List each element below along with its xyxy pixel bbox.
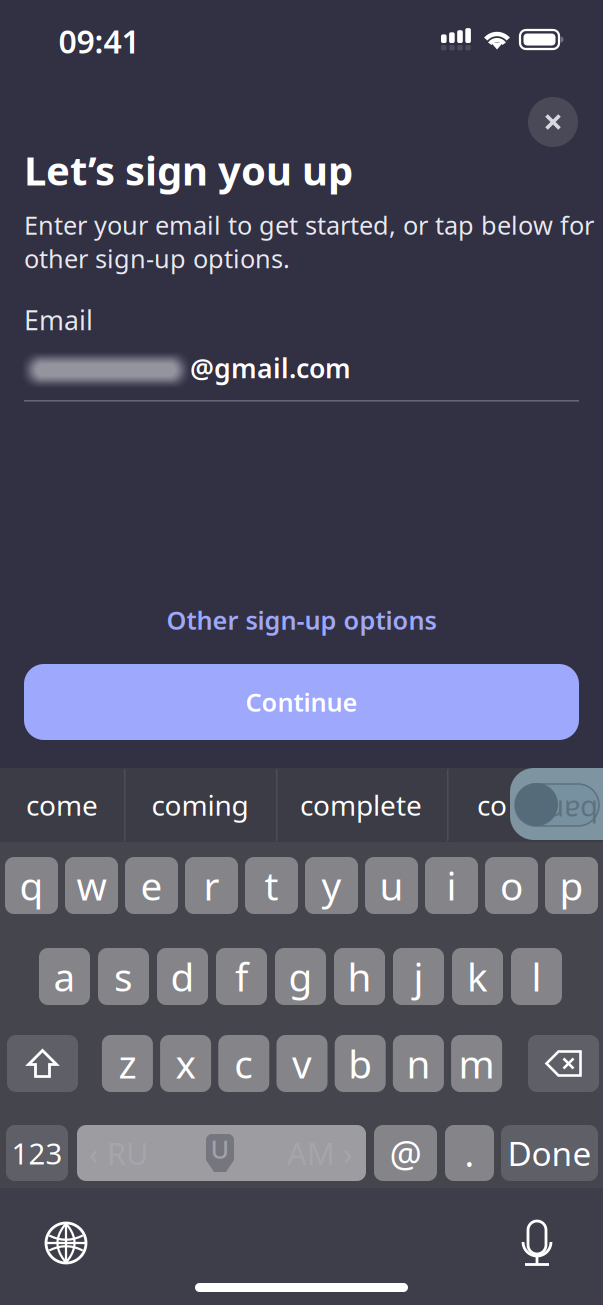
staticText: j [413,951,423,1002]
staticText: p [559,860,583,911]
staticText: a [53,951,75,1002]
button[interactable]: u [365,857,418,914]
staticText: 09:41 [58,20,139,62]
staticText: ‹ RU [89,1133,148,1173]
staticText: Let’s sign you up [24,143,353,196]
staticText: v [292,1038,312,1089]
button[interactable]: e [125,857,178,914]
button[interactable]: y [305,857,358,914]
button[interactable]: Space [77,1125,366,1181]
staticText: t [264,860,278,911]
staticText: y [321,860,341,911]
staticText: @gmail.com [190,350,351,386]
button[interactable]: w [65,857,118,914]
button[interactable]: m [451,1035,502,1092]
staticText: Done [507,1131,591,1175]
button[interactable]: Done [501,1125,598,1181]
button[interactable]: t [245,857,298,914]
button[interactable]: . [445,1125,494,1181]
button[interactable]: p [545,857,598,914]
button[interactable]: j [393,948,444,1005]
staticText: complete [300,786,422,824]
button[interactable]: h [334,948,385,1005]
staticText: uɐq [546,785,598,824]
staticText: come [26,786,98,824]
staticText: z [118,1038,136,1089]
button[interactable]: complete [276,768,446,842]
button[interactable]: Close [528,97,578,147]
button[interactable]: l [511,948,562,1005]
button[interactable]: @ [374,1125,437,1181]
button[interactable]: Shift [7,1035,78,1092]
staticText: h [347,951,371,1002]
button[interactable]: n [393,1035,444,1092]
button[interactable]: co [447,768,537,842]
staticText: co [477,786,507,824]
staticText: @ [389,1129,421,1177]
staticText: w [76,860,106,911]
button[interactable]: come [0,768,124,842]
staticText: . [464,1129,474,1177]
button[interactable]: o [485,857,538,914]
button[interactable]: k [452,948,503,1005]
button[interactable]: a [39,948,90,1005]
button[interactable]: d [157,948,208,1005]
button[interactable]: Delete [528,1035,599,1092]
staticText: AM › [287,1133,353,1173]
button[interactable]: r [185,857,238,914]
button[interactable]: Other sign-up options [0,600,603,640]
staticText: m [459,1038,495,1089]
staticText: b [348,1038,372,1089]
staticText: Other sign-up options [166,603,436,637]
staticText: k [467,951,488,1002]
button[interactable]: s [98,948,149,1005]
button[interactable]: c [218,1035,269,1092]
staticText: e [140,860,162,911]
button[interactable]: Continue [24,664,579,740]
button[interactable]: v [276,1035,327,1092]
button[interactable]: 123 [6,1125,68,1181]
button[interactable]: coming [125,768,275,842]
staticText: q [19,860,43,911]
staticText: U [210,1132,229,1166]
button[interactable]: g [275,948,326,1005]
button[interactable]: Next keyboard [38,1215,94,1271]
staticText: u [379,860,403,911]
staticText: x [176,1038,196,1089]
staticText: c [234,1038,253,1089]
button[interactable]: z [102,1035,153,1092]
staticText: r [203,860,219,911]
staticText: d [170,951,194,1002]
staticText: s [114,951,133,1002]
staticText: Email [24,302,93,338]
button[interactable]: x [160,1035,211,1092]
button[interactable]: b [335,1035,386,1092]
staticText: f [235,951,248,1002]
staticText: i [446,860,456,911]
staticText: 123 [11,1133,62,1172]
staticText: g [288,951,312,1002]
staticText: coming [151,786,248,824]
button[interactable]: i [425,857,478,914]
button[interactable]: f [216,948,267,1005]
staticText: n [406,1038,430,1089]
staticText: o [500,860,523,911]
staticText: Enter your email to get started, or tap … [24,208,594,275]
staticText: l [531,951,541,1002]
button[interactable]: Dictation [509,1215,565,1271]
staticText: Continue [245,685,357,719]
button[interactable]: q [5,857,58,914]
